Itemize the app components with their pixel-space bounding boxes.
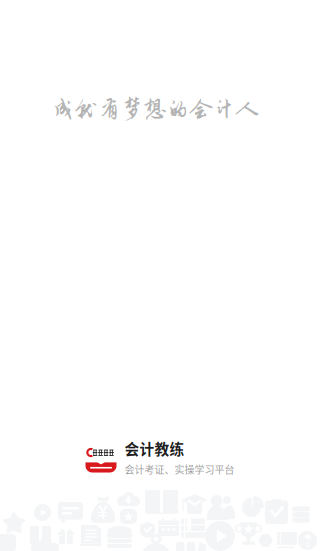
staticText: 会计考证、实操学习平台	[124, 462, 234, 476]
staticText: 成就有梦想的会计人	[51, 96, 258, 122]
staticText: 会计教练	[124, 438, 184, 459]
